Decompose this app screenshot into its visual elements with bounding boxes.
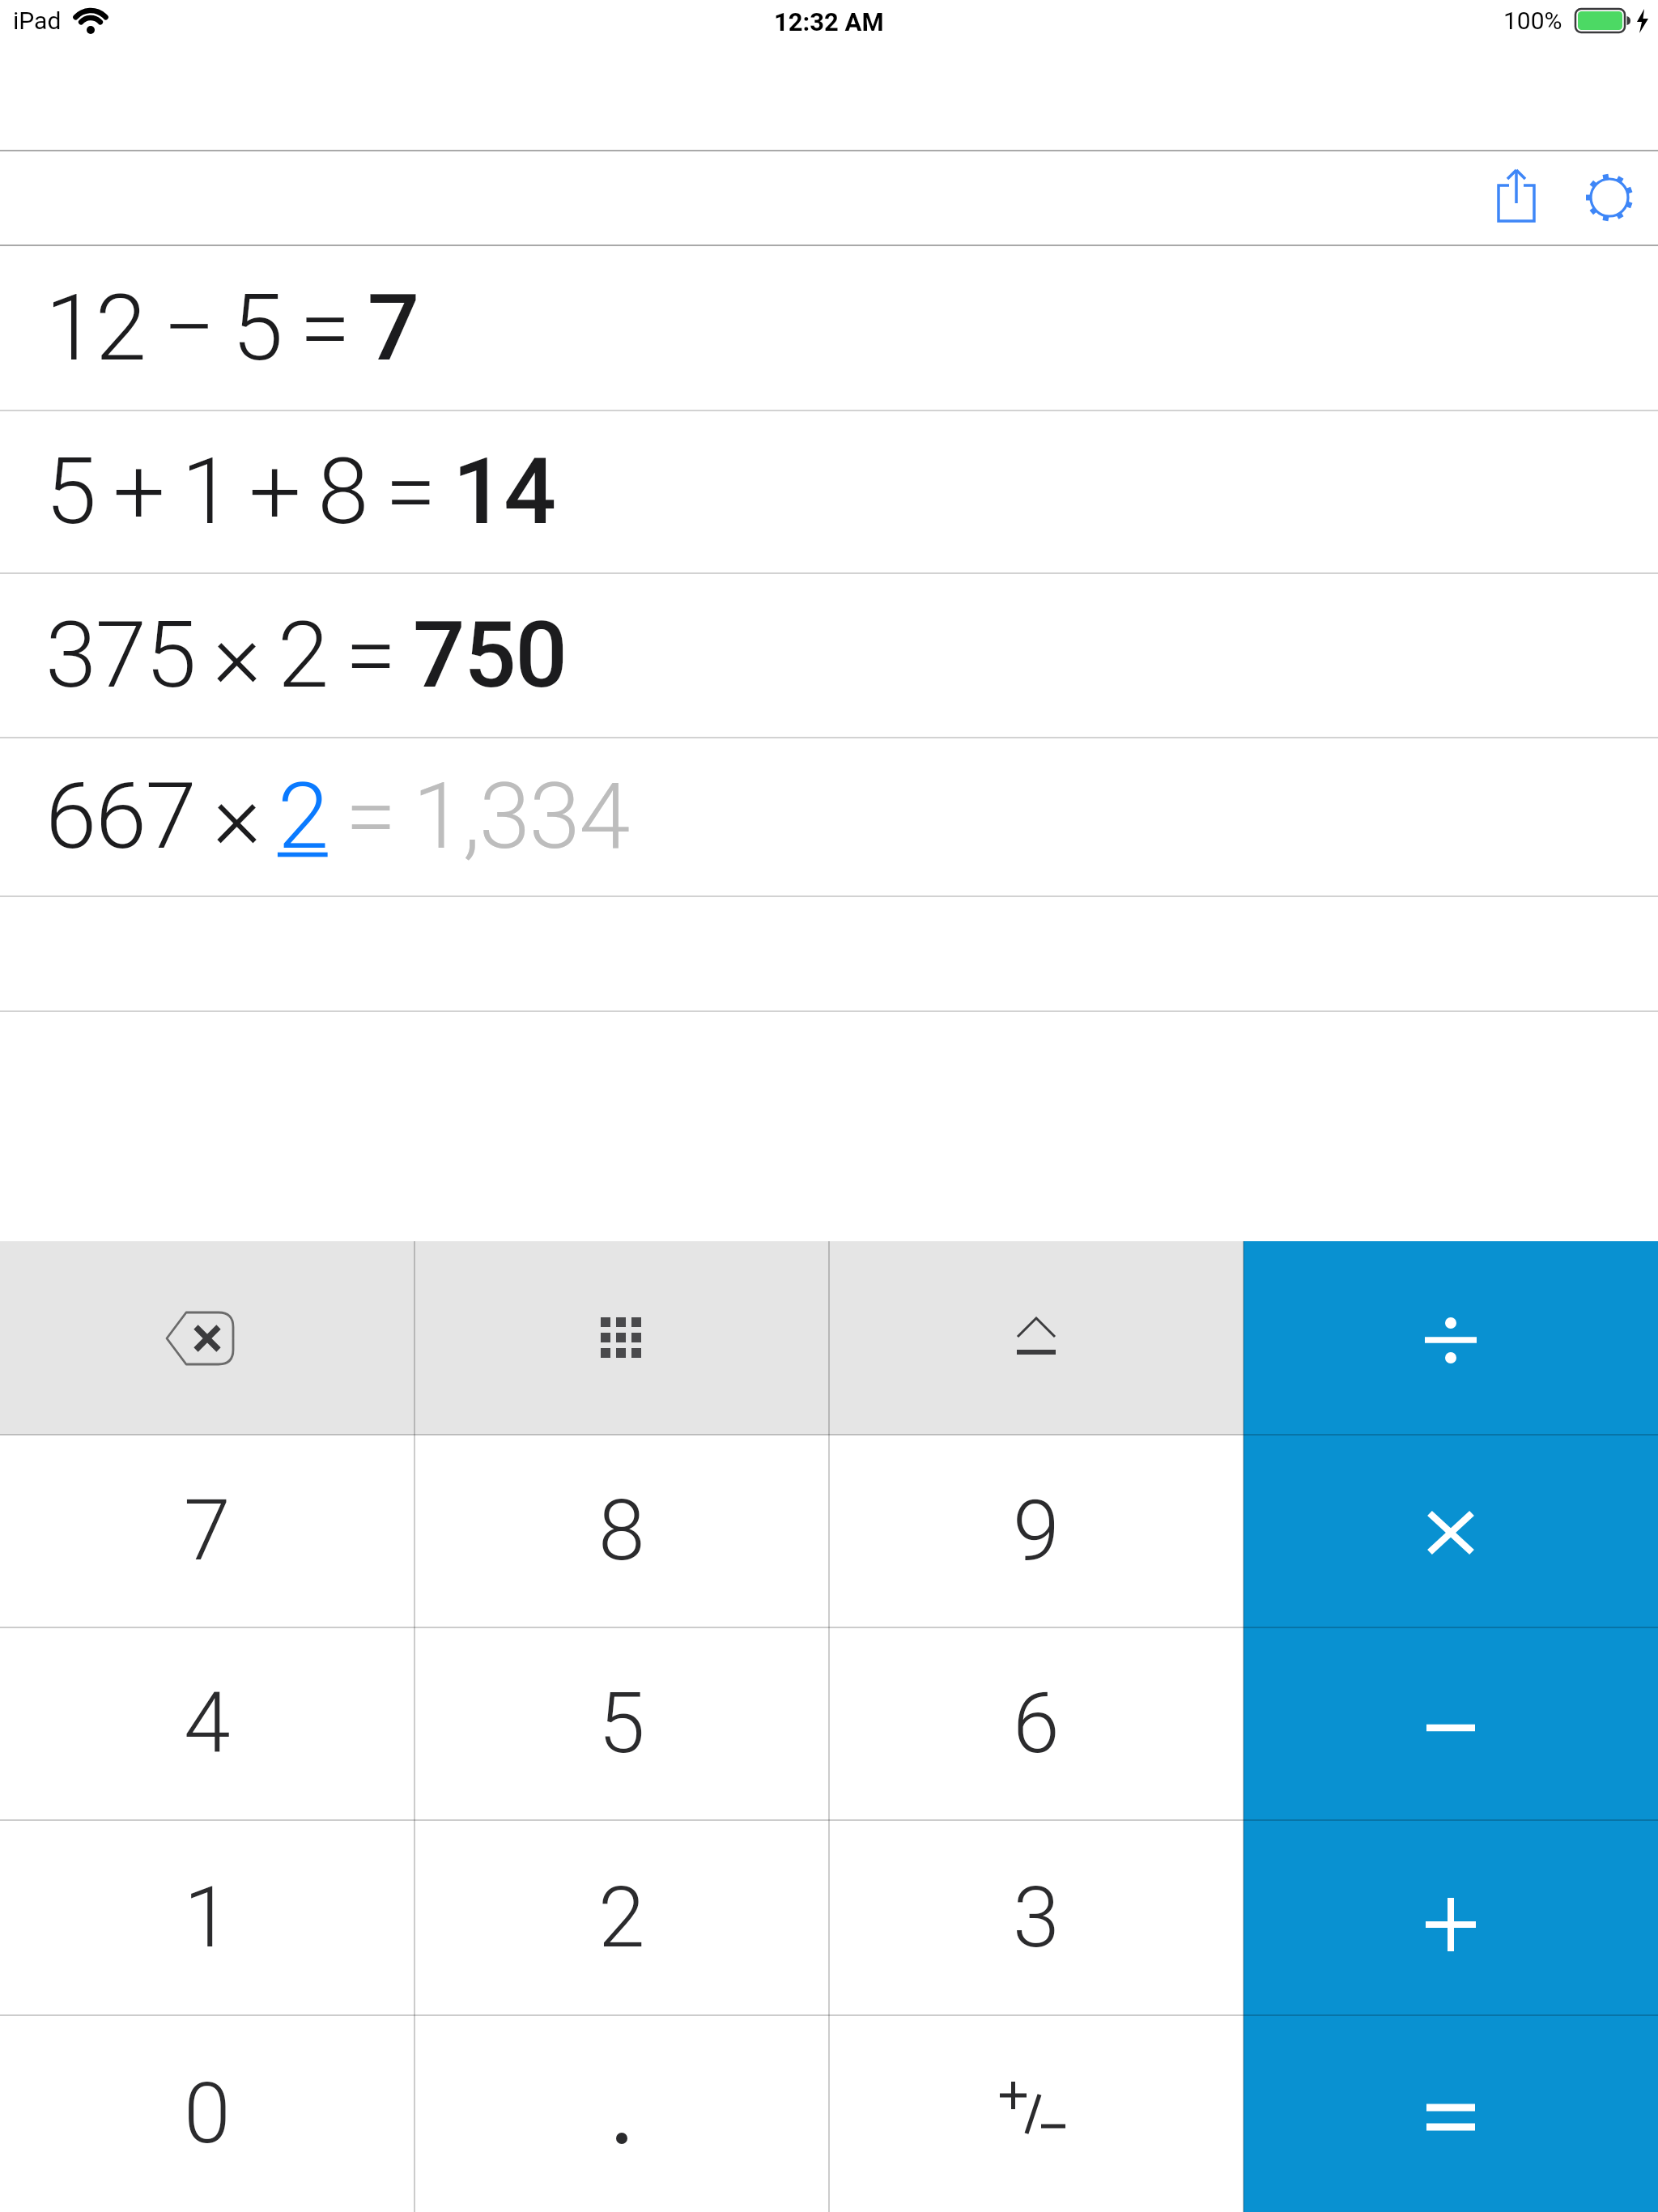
button[interactable]: 1	[0, 1820, 414, 2015]
button[interactable]: 0	[0, 2015, 414, 2212]
button[interactable]	[1243, 1820, 1658, 2015]
button[interactable]	[1243, 1435, 1658, 1627]
button[interactable]	[1243, 1241, 1658, 1435]
staticText: 2	[598, 1869, 645, 1967]
staticText: 4	[184, 1674, 231, 1773]
button[interactable]	[829, 1241, 1243, 1435]
staticText: 100%	[1503, 6, 1562, 35]
staticText: 6	[1013, 1674, 1060, 1773]
button[interactable]: 5 + 1 + 8 = 14	[0, 410, 1658, 572]
button[interactable]: 4	[0, 1627, 414, 1820]
button[interactable]: 5	[414, 1627, 829, 1820]
button[interactable]	[1482, 164, 1550, 231]
button[interactable]	[829, 2015, 1243, 2212]
staticText: 0	[184, 2065, 231, 2163]
button[interactable]: 7	[0, 1435, 414, 1627]
staticText: 8	[598, 1482, 645, 1580]
staticText: iPad	[13, 6, 62, 35]
button[interactable]: 3	[829, 1820, 1243, 2015]
staticText: 12 − 5 = 7	[45, 274, 419, 382]
staticText: 375 × 2 = 750	[45, 601, 567, 709]
button[interactable]	[414, 2015, 829, 2212]
button[interactable]	[0, 1241, 414, 1435]
button[interactable]	[1243, 2015, 1658, 2212]
staticText: 5	[598, 1674, 645, 1773]
button[interactable]: 6	[829, 1627, 1243, 1820]
button[interactable]: 9	[829, 1435, 1243, 1627]
staticText: 5 + 1 + 8 = 14	[45, 437, 555, 546]
button[interactable]	[1243, 1627, 1658, 1820]
button[interactable]: 12 − 5 = 7	[0, 246, 1658, 410]
staticText: 667 × 2 = 1,334	[45, 762, 630, 870]
button[interactable]: 375 × 2 = 750	[0, 572, 1658, 737]
staticText: 12:32 AM	[774, 7, 884, 36]
button[interactable]: 2	[414, 1820, 829, 2015]
staticText: 9	[1013, 1482, 1060, 1580]
button[interactable]: 667 × 2 = 1,334	[0, 737, 1658, 895]
button[interactable]: 8	[414, 1435, 829, 1627]
staticText: 7	[184, 1482, 231, 1580]
staticText: 3	[1013, 1869, 1060, 1967]
staticText: 1	[184, 1869, 231, 1967]
button[interactable]	[1584, 172, 1635, 223]
button[interactable]	[414, 1241, 829, 1435]
